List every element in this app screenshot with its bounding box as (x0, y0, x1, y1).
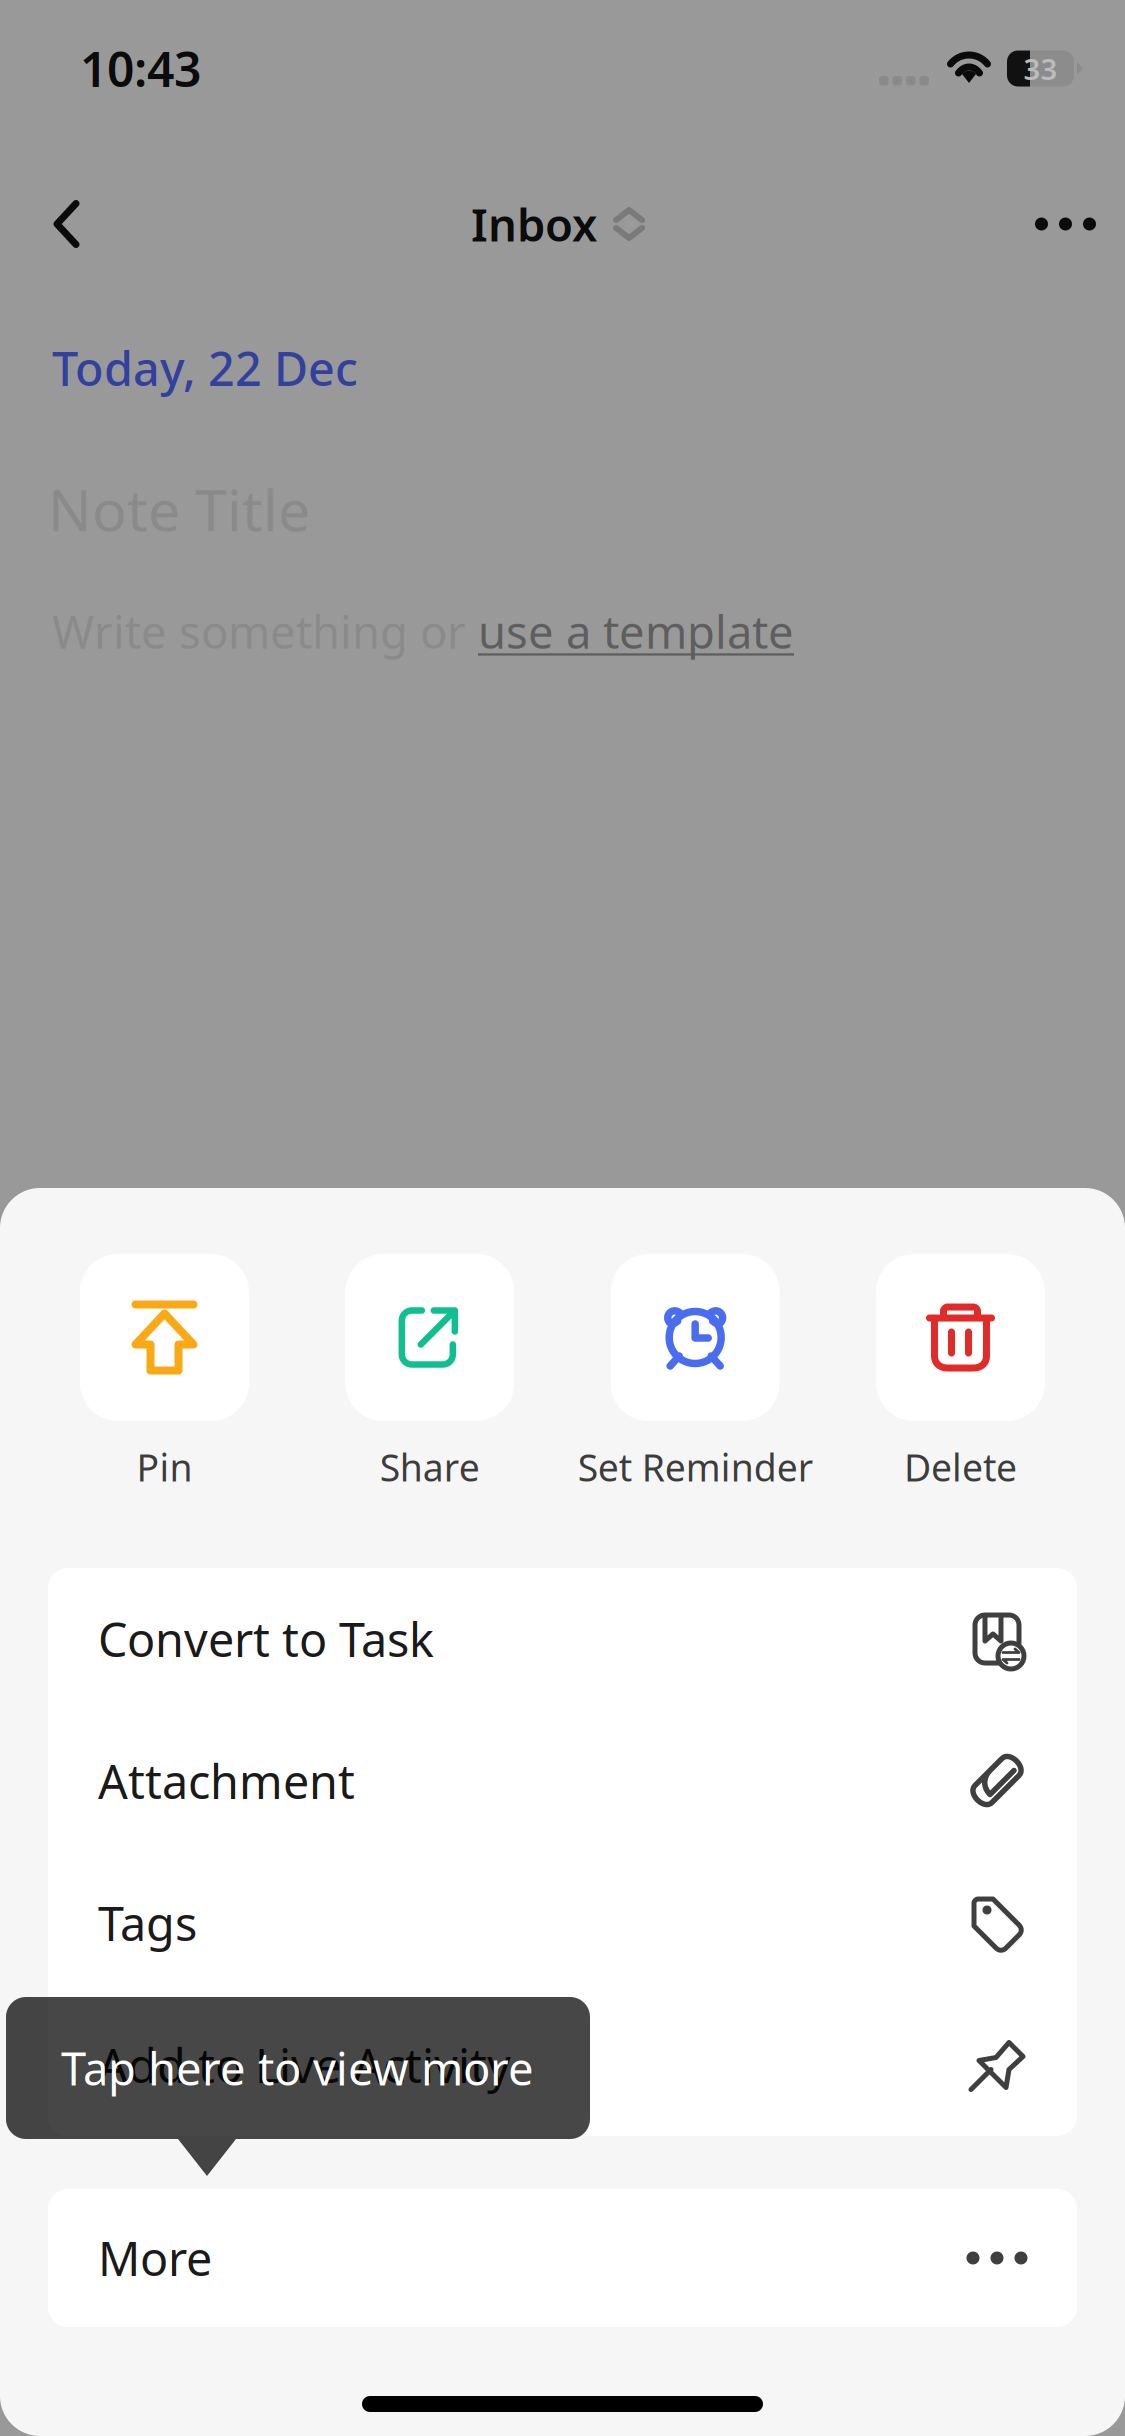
staticText: Share (380, 1442, 480, 1492)
button[interactable]: Share (345, 1254, 514, 1489)
staticText: Write something or (52, 601, 478, 661)
staticText: Tags (98, 1892, 197, 1954)
staticText: More (98, 2227, 212, 2289)
button[interactable]: Inbox (471, 170, 645, 278)
button[interactable]: Pin (80, 1254, 249, 1489)
button[interactable]: Attachment (48, 1710, 1077, 1852)
staticText: Tap here to view more (61, 2038, 534, 2098)
button[interactable]: More options (995, 177, 1125, 270)
staticText: Today, 22 Dec (52, 337, 358, 399)
staticText: Note Title (48, 471, 310, 547)
staticText: 10:43 (80, 37, 201, 100)
staticText: Attachment (98, 1750, 355, 1812)
button[interactable]: Tags (48, 1852, 1077, 1994)
staticText: Convert to Task (98, 1608, 434, 1670)
staticText: use a template (478, 601, 794, 661)
button[interactable]: More (48, 2187, 1077, 2329)
staticText: Set Reminder (578, 1442, 813, 1492)
staticText: 33 (1023, 49, 1057, 88)
button[interactable]: Back (0, 172, 121, 275)
button[interactable]: Delete (876, 1254, 1045, 1489)
staticText: Pin (136, 1442, 192, 1492)
staticText: Inbox (471, 194, 597, 254)
button[interactable]: Add to Live Activity (48, 1994, 1077, 2136)
button[interactable]: Convert to Task (48, 1568, 1077, 1710)
staticText: Add to Live Activity (98, 2034, 511, 2096)
button[interactable]: Set Reminder (611, 1254, 780, 1489)
staticText: Delete (904, 1442, 1017, 1492)
